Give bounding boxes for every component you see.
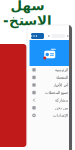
staticText: سهل: [10, 0, 44, 13]
button[interactable]: الرئيسية: [29, 66, 70, 74]
staticText: جميع المحطات: [44, 90, 67, 95]
staticText: مشاركة: [54, 98, 67, 102]
button[interactable]: مشاركة: [29, 96, 70, 104]
staticText: الرئيسية: [54, 67, 67, 72]
staticText: آخر الأخبار: [52, 83, 67, 87]
staticText: الاستخدام: [2, 13, 51, 43]
button[interactable]: جميع المحطات: [29, 89, 70, 96]
button[interactable]: الإعدادات: [29, 112, 70, 119]
staticText: الإعدادات: [52, 113, 67, 118]
button[interactable]: المفضلة: [29, 74, 70, 81]
staticText: من نحن: [54, 105, 67, 110]
button[interactable]: آخر الأخبار: [29, 81, 70, 89]
button[interactable]: من نحن: [29, 104, 70, 112]
staticText: المفضلة: [55, 75, 67, 80]
